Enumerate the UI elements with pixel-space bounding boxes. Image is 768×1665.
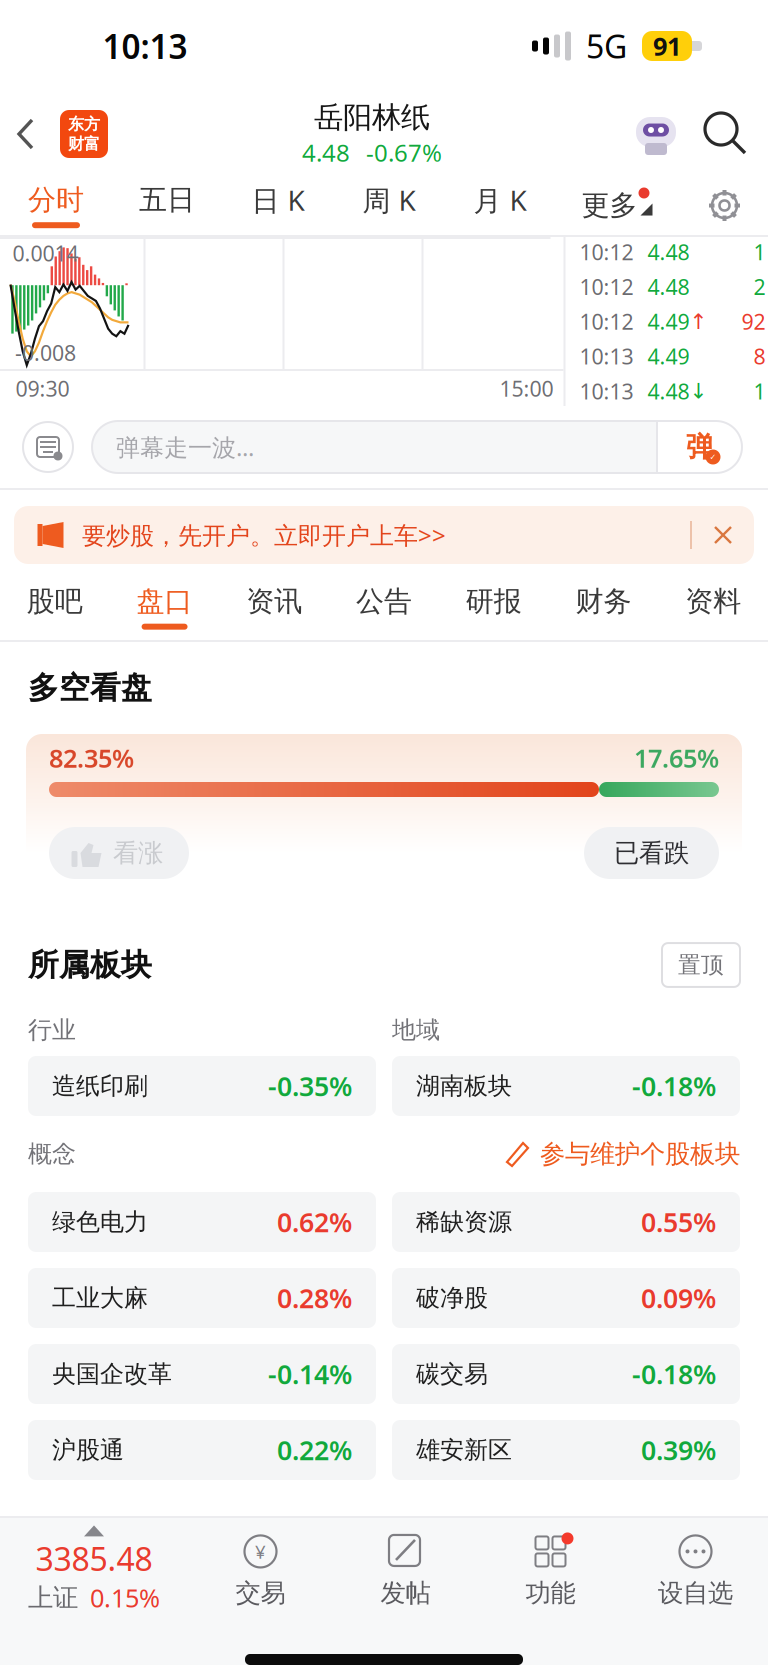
staticText: 0.15% <box>90 1581 160 1614</box>
button[interactable]: 造纸印刷 <box>28 1056 376 1116</box>
staticText: 工业大麻 <box>52 1283 148 1313</box>
staticText: 所属板块 <box>28 946 152 984</box>
staticText: 8 <box>753 342 765 370</box>
staticText: 4.49 <box>647 307 689 336</box>
staticText: 弹 <box>686 430 714 464</box>
staticText: 0.62% <box>277 1204 352 1240</box>
staticText: 交易 <box>235 1577 285 1608</box>
staticText: 15:00 <box>499 374 553 403</box>
staticText: 发帖 <box>380 1577 430 1608</box>
staticText: 湖南板块 <box>416 1071 512 1101</box>
staticText: 0.0014 <box>12 239 78 267</box>
staticText: -0.18% <box>632 1068 716 1104</box>
staticText: 3385.48 <box>35 1537 152 1580</box>
button[interactable]: 央国企改革 <box>28 1344 376 1404</box>
staticText: 周 K <box>362 181 415 219</box>
button[interactable]: 参与维护个股板块 <box>506 1138 740 1169</box>
staticText: 已看跌 <box>614 837 689 868</box>
staticText: 东方 <box>68 114 100 134</box>
staticText: 日 K <box>251 181 304 219</box>
staticText: 0.39% <box>641 1432 716 1468</box>
staticText: 沪股通 <box>52 1435 124 1465</box>
button[interactable]: 破净股 <box>392 1268 740 1328</box>
staticText: 多空看盘 <box>28 669 152 707</box>
button[interactable]: 东方财富 <box>52 102 116 166</box>
staticText: 0.55% <box>641 1204 716 1240</box>
button[interactable]: 返回 <box>0 104 52 164</box>
staticText: 10:13 <box>579 377 633 405</box>
button[interactable]: 周 K <box>333 176 444 235</box>
button[interactable]: 雄安新区 <box>392 1420 740 1480</box>
staticText: 17.65% <box>634 741 719 775</box>
staticText: ↑ <box>689 309 707 334</box>
staticText: 参与维护个股板块 <box>540 1138 740 1169</box>
button[interactable]: 搜索 <box>684 104 768 164</box>
staticText: 功能 <box>525 1577 575 1608</box>
staticText: 10:12 <box>579 307 633 336</box>
staticText: 0.22% <box>277 1432 352 1468</box>
staticText: -0.67% <box>366 137 442 168</box>
button[interactable]: 分时 <box>0 176 111 235</box>
staticText: 10:13 <box>579 342 633 370</box>
button[interactable]: 公告 <box>329 574 439 640</box>
staticText: 股吧 <box>27 584 83 619</box>
staticText: 弹幕走一波... <box>116 431 254 463</box>
button[interactable]: 研报 <box>439 574 549 640</box>
button[interactable]: 五日 <box>111 176 222 235</box>
button[interactable]: 设置 <box>681 176 767 234</box>
staticText: 4.48 <box>647 238 689 266</box>
button[interactable]: 设自选 <box>623 1518 768 1622</box>
button[interactable]: 要炒股，先开户。立即开户上车>> <box>0 490 768 574</box>
button[interactable]: 沪股通 <box>28 1420 376 1480</box>
button[interactable]: 股吧 <box>0 574 110 640</box>
button[interactable]: 看涨 <box>49 827 189 879</box>
staticText: 造纸印刷 <box>52 1071 148 1101</box>
staticText: 更多 <box>581 188 637 223</box>
button[interactable]: 已看跌 <box>584 827 719 879</box>
button[interactable]: 弹幕设置 <box>20 419 76 475</box>
button[interactable]: 置顶 <box>662 943 740 987</box>
staticText: 5G <box>586 25 627 67</box>
staticText: 0.09% <box>641 1280 716 1316</box>
staticText: 分时 <box>28 183 84 217</box>
staticText: 看涨 <box>113 837 163 868</box>
button[interactable]: 绿色电力 <box>28 1192 376 1252</box>
staticText: 上证 <box>28 1582 78 1613</box>
staticText: 财务 <box>575 584 631 619</box>
button[interactable]: 湖南板块 <box>392 1056 740 1116</box>
staticText: 概念 <box>28 1139 76 1169</box>
staticText: 2 <box>753 272 765 301</box>
button[interactable]: 工业大麻 <box>28 1268 376 1328</box>
button[interactable]: 3385.48 <box>0 1518 188 1622</box>
button[interactable]: 碳交易 <box>392 1344 740 1404</box>
staticText: -0.14% <box>268 1356 352 1392</box>
button[interactable]: 月 K <box>444 176 555 235</box>
staticText: -0.008 <box>15 339 76 367</box>
staticText: 资料 <box>685 584 741 619</box>
button[interactable]: 财务 <box>549 574 658 640</box>
staticText: 82.35% <box>49 741 134 775</box>
staticText: 公告 <box>356 584 412 619</box>
staticText: -0.35% <box>268 1068 352 1104</box>
button[interactable]: 盘口 <box>110 574 219 640</box>
button[interactable]: 更多 <box>555 176 681 234</box>
button[interactable]: 智能助手 <box>628 106 684 162</box>
button[interactable]: 稀缺资源 <box>392 1192 740 1252</box>
staticText: 10:12 <box>579 238 633 266</box>
button[interactable]: ¥ <box>188 1518 333 1622</box>
staticText: ✓ <box>709 452 716 462</box>
button[interactable]: 发帖 <box>333 1518 478 1622</box>
button[interactable]: 资讯 <box>219 574 329 640</box>
button[interactable]: 功能 <box>478 1518 623 1622</box>
staticText: 地域 <box>392 1015 440 1045</box>
staticText: 92 <box>741 307 765 336</box>
staticText: 绿色电力 <box>52 1207 148 1237</box>
staticText: 研报 <box>466 584 522 619</box>
button[interactable]: 日 K <box>222 176 333 235</box>
staticText: 4.48 <box>647 377 689 405</box>
staticText: 稀缺资源 <box>416 1207 512 1237</box>
staticText: 雄安新区 <box>416 1435 512 1465</box>
button[interactable]: 资料 <box>658 574 768 640</box>
